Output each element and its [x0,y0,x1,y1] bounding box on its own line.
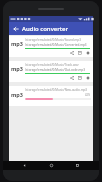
staticText: /storage/emulated/0/Music/Sound.mp3 [25,38,81,42]
staticText: mp3 [11,40,23,47]
button[interactable]: Save [77,50,83,56]
staticText: /storage/emulated/0/Music/New-audio.mp3 [25,88,88,92]
staticText: /storage/emulated/0/Music/Converted.mp3 [25,43,87,47]
button[interactable]: Home [47,161,56,170]
button[interactable]: Settings [85,50,91,56]
staticText: /storage/emulated/0/Music/Out-code.mp3 [25,68,85,72]
button[interactable]: Share [69,50,75,56]
staticText: mp3 [11,91,23,98]
button[interactable]: Back [20,161,29,170]
button[interactable]: Recent apps [73,161,82,170]
button[interactable]: Settings [85,75,91,81]
button[interactable]: mp3 [9,36,93,57]
staticText: 42% [85,93,91,97]
staticText: mp3 [11,65,23,72]
staticText: Audio converter [22,25,69,33]
button[interactable]: Save [77,75,83,81]
button[interactable]: Navigate up [9,22,22,35]
staticText: /storage/emulated/0/Music/Track.wav [25,63,79,67]
button[interactable]: mp3 [9,61,93,82]
button[interactable]: mp3 [9,86,93,106]
button[interactable]: Share [69,75,75,81]
